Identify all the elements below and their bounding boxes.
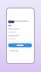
button[interactable]: Learn more [9, 50, 19, 51]
button[interactable]: Continue [8, 43, 32, 47]
